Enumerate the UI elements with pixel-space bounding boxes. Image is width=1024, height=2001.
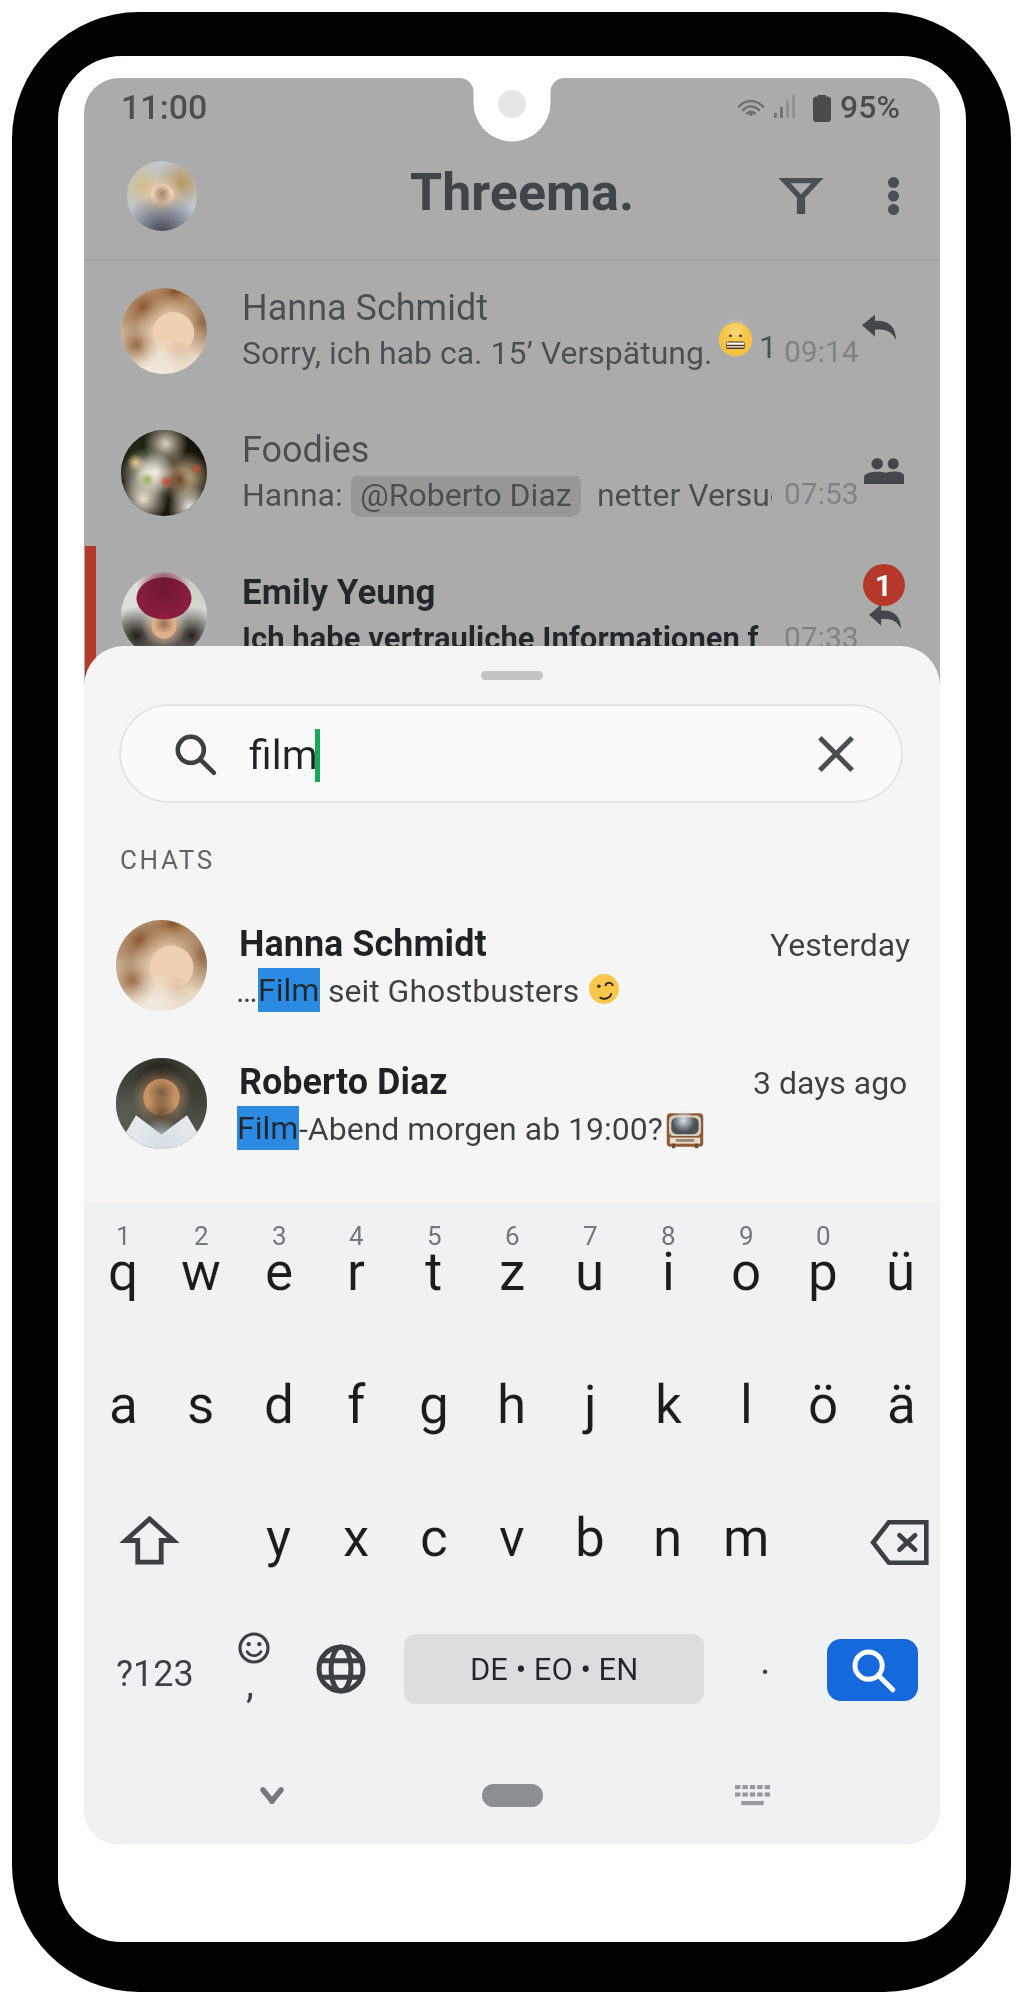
button[interactable]: Profile [127,161,197,231]
staticText: 95% [840,88,900,126]
button[interactable]: . [726,1602,805,1735]
button[interactable]: More options [849,152,937,240]
staticText: 1 [116,1221,131,1251]
button[interactable]: 0 [784,1203,862,1332]
staticText: s [187,1374,215,1436]
button[interactable]: Roberto Diaz [84,1040,940,1176]
button[interactable]: Clear search [801,719,871,789]
staticText: 9 [739,1221,754,1251]
button[interactable]: ö [784,1336,862,1469]
staticText: 11:00 [121,87,208,127]
button[interactable]: b [551,1469,629,1602]
staticText: 5 [427,1221,442,1251]
button[interactable]: Filter chats [757,152,845,240]
staticText: 3 [272,1221,287,1251]
button[interactable]: x [317,1469,395,1602]
button[interactable]: ä [862,1336,940,1469]
staticText: Ich habe vertrauliche Informationen f [242,620,759,656]
button[interactable]: k [629,1336,707,1469]
staticText: ö [808,1374,839,1436]
button[interactable]: Search [827,1639,918,1701]
staticText: DE • EO • EN [470,1651,639,1687]
staticText: … [236,972,258,1010]
button[interactable]: n [629,1469,707,1602]
staticText: Film [237,1109,299,1147]
staticText: . [760,1637,771,1684]
staticText: f [347,1374,366,1436]
button[interactable]: 1 [84,1203,162,1332]
button[interactable]: Emily Yeung [84,546,940,688]
staticText: 4 [349,1221,364,1251]
button[interactable]: f [317,1336,395,1469]
button[interactable]: 9 [707,1203,785,1332]
button[interactable]: c [395,1469,473,1602]
button[interactable]: j [551,1336,629,1469]
staticText: h [497,1374,527,1436]
staticText: 07:53 [784,476,859,511]
button[interactable]: Backspace [844,1469,940,1602]
staticText: d [264,1374,294,1436]
staticText: m [723,1507,770,1569]
button[interactable]: g [395,1336,473,1469]
staticText: netter Versuch [581,476,772,514]
staticText: a [109,1374,138,1436]
staticText: 1 [759,328,777,366]
staticText: p [808,1241,838,1303]
button[interactable]: a [84,1336,162,1469]
button[interactable]: Home [482,1784,543,1807]
button[interactable]: Hanna Schmidt [84,902,940,1038]
staticText: e [265,1241,294,1303]
button[interactable]: v [473,1469,551,1602]
button[interactable]: l [707,1336,785,1469]
button[interactable]: h [473,1336,551,1469]
staticText: 8 [661,1221,676,1251]
button[interactable]: ü [862,1203,940,1332]
button[interactable]: Switch keyboard [714,1763,790,1827]
staticText: v [499,1507,525,1569]
button[interactable]: Hanna Schmidt [84,262,940,404]
staticText: ü [886,1241,916,1303]
staticText: ä [887,1374,916,1436]
staticText: 0 [816,1221,831,1251]
button[interactable]: 4 [317,1203,395,1332]
button[interactable]: Change keyboard language [300,1602,382,1735]
button[interactable]: m [707,1469,785,1602]
staticText: Roberto Diaz [239,1061,448,1103]
staticText: seit Ghostbusters [320,972,580,1010]
button[interactable]: 8 [629,1203,707,1332]
staticText: CHATS [120,845,215,875]
staticText: n [653,1507,683,1569]
button[interactable]: film [119,704,903,803]
button[interactable]: Emoji [210,1602,300,1735]
staticText: 1 [875,568,893,603]
staticText: Sorry, ich hab ca. 15’ Verspätung. [242,334,721,372]
button[interactable]: Shift [84,1469,284,1602]
staticText: q [108,1241,139,1303]
staticText: 6 [505,1221,520,1251]
button[interactable]: s [162,1336,240,1469]
button[interactable]: Foodies [84,404,940,546]
button[interactable]: Hide keyboard [234,1763,310,1827]
staticText: t [425,1241,443,1303]
button[interactable]: 6 [473,1203,551,1332]
button[interactable]: 5 [395,1203,473,1332]
staticText: Hanna Schmidt [239,923,487,965]
button[interactable]: 3 [240,1203,318,1332]
staticText: 09:14 [784,334,859,369]
staticText: y [266,1507,292,1569]
button[interactable]: 7 [551,1203,629,1332]
staticText: z [499,1241,526,1303]
staticText: 7 [583,1221,598,1251]
button[interactable]: DE • EO • EN [404,1634,704,1704]
staticText: r [347,1241,365,1303]
staticText: 3 days ago [753,1064,908,1102]
button[interactable]: 2 [162,1203,240,1332]
button[interactable]: y [240,1469,318,1602]
staticText: Hanna Schmidt [242,287,488,329]
staticText: l [740,1374,753,1436]
button[interactable]: d [240,1336,318,1469]
button[interactable]: ?123 [84,1602,210,1735]
staticText: -Abend morgen ab 19:00? [299,1110,663,1148]
staticText: x [343,1507,370,1569]
staticText: film [249,731,318,779]
